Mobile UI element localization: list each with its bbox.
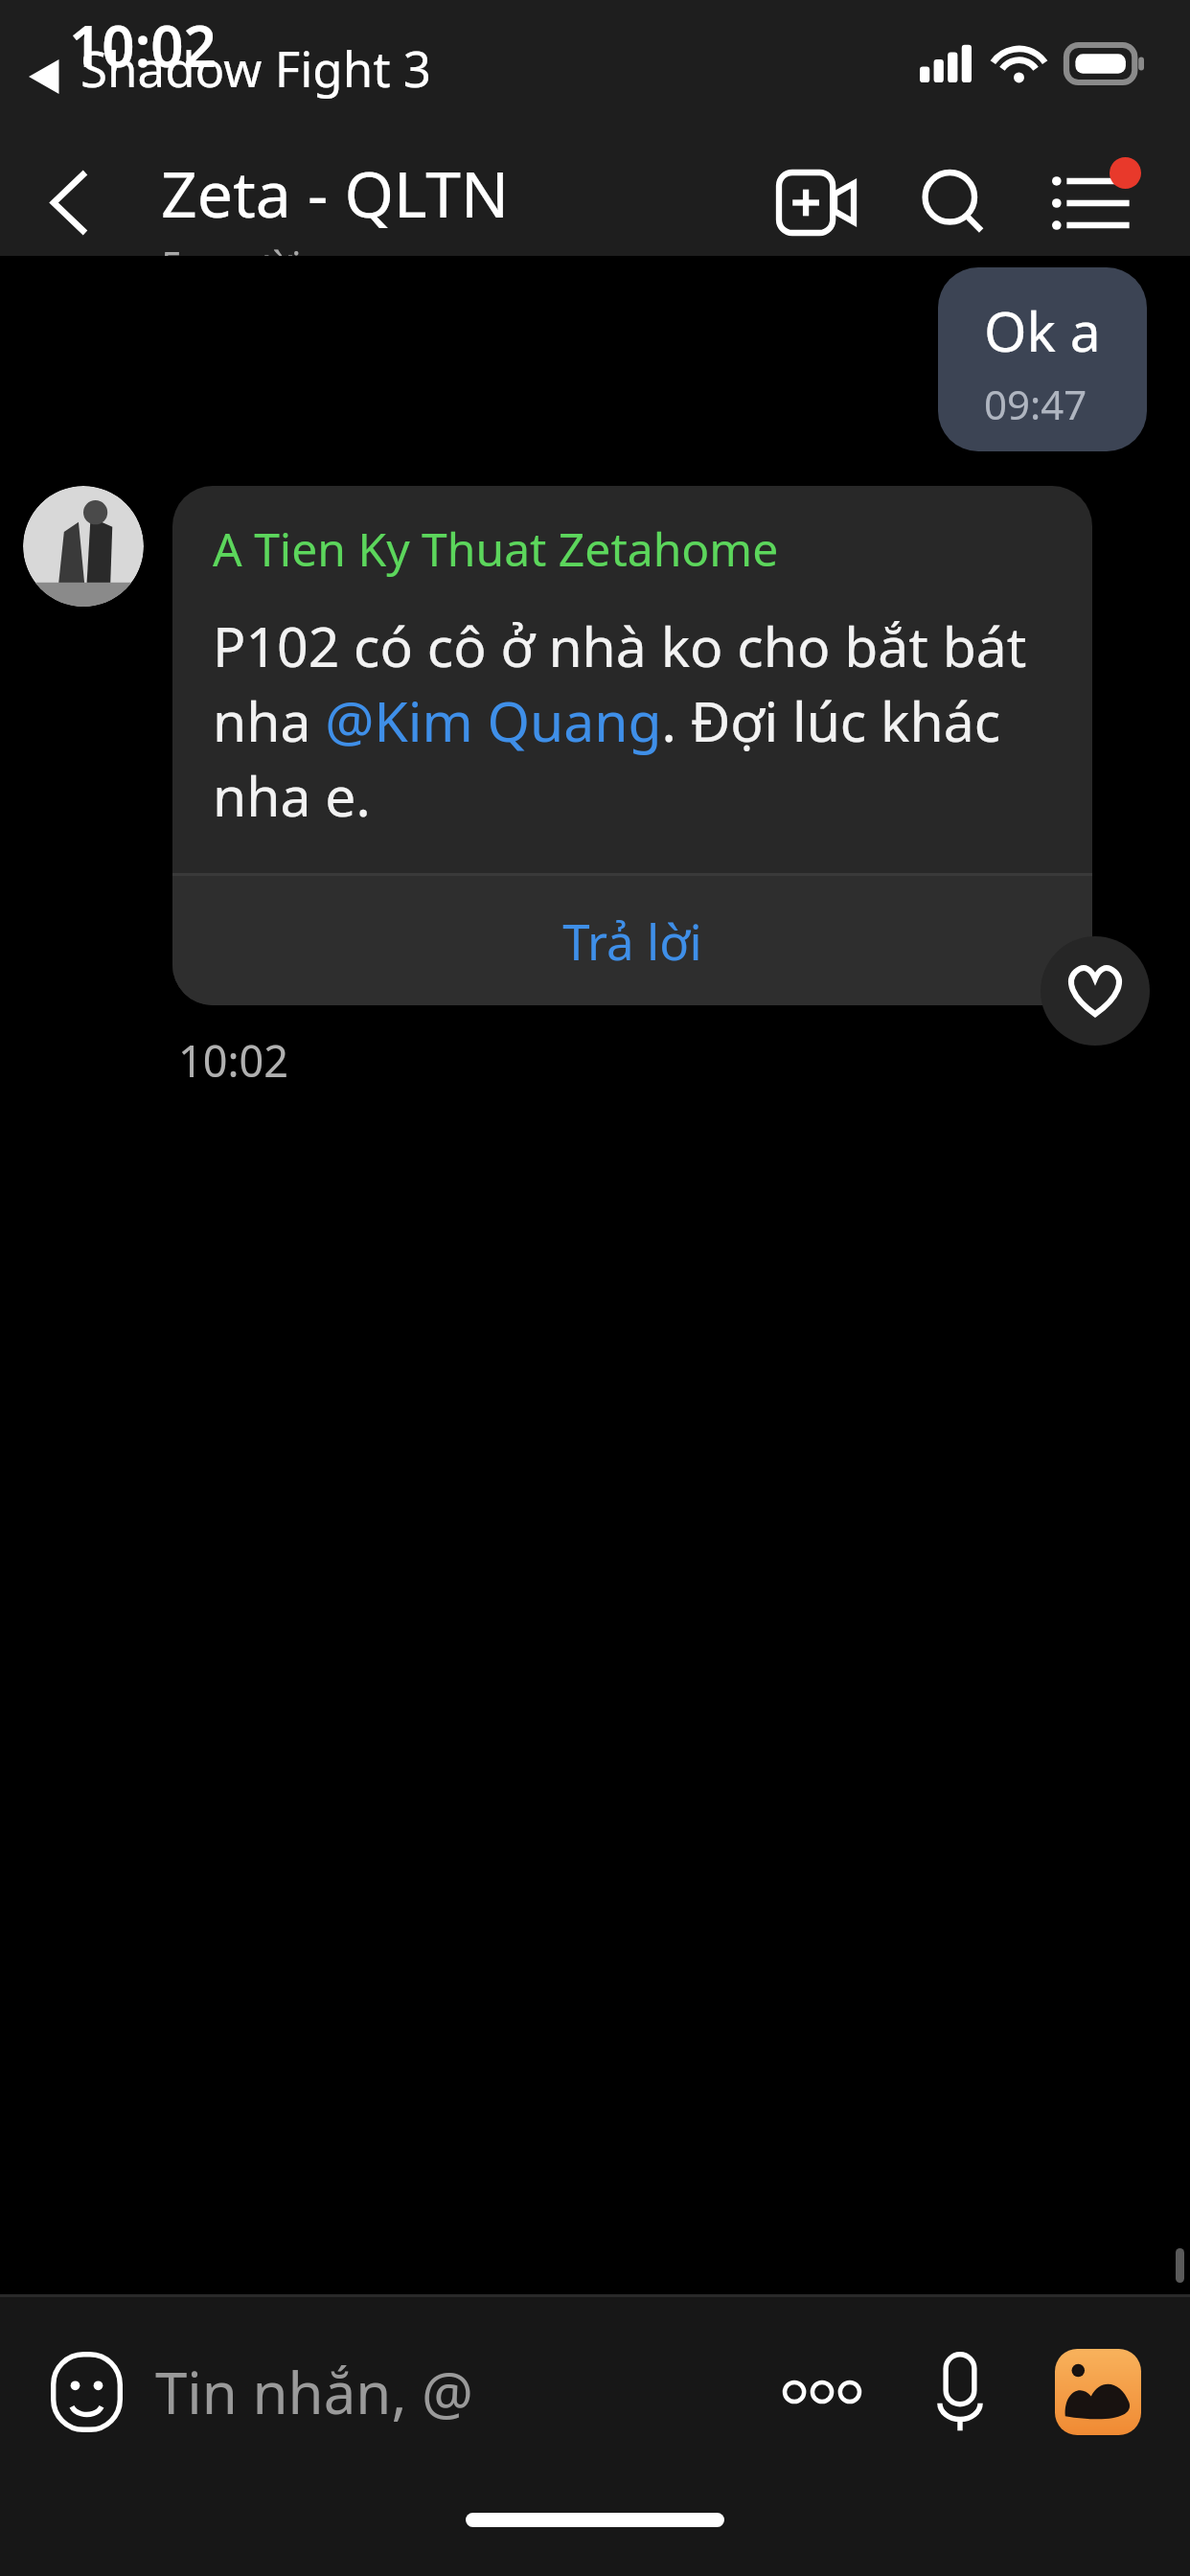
staticText: Trả lời bbox=[562, 908, 702, 974]
button[interactable]: Send photo bbox=[1029, 2323, 1167, 2461]
staticText: 10:02 bbox=[178, 1031, 289, 1090]
staticText: 09:47 bbox=[984, 377, 1087, 431]
button[interactable]: Back bbox=[6, 149, 132, 256]
staticText: Zeta - QLTN bbox=[161, 149, 510, 236]
staticText: 10:02 bbox=[69, 6, 217, 84]
button[interactable]: Search bbox=[885, 149, 1023, 256]
button[interactable]: Ok a bbox=[938, 267, 1147, 451]
staticText: A Tien Ky Thuat Zetahome bbox=[213, 517, 779, 580]
button[interactable]: Trả lời bbox=[172, 876, 1092, 1005]
staticText: P102 có cô ở nhà ko cho bắt bát nha @Kim… bbox=[213, 609, 1052, 833]
button[interactable]: Menu bbox=[1023, 149, 1161, 256]
button[interactable]: A Tien Ky Thuat Zetahome bbox=[172, 486, 1092, 1005]
button[interactable]: Sticker bbox=[23, 2329, 149, 2455]
staticText: Ok a bbox=[984, 293, 1101, 368]
button[interactable]: More options bbox=[753, 2323, 891, 2461]
button[interactable]: Voice message bbox=[891, 2323, 1029, 2461]
staticText: Shadow Fight 3 bbox=[80, 34, 432, 101]
button[interactable]: Video call bbox=[747, 149, 885, 256]
staticText: 5 người bbox=[161, 239, 302, 256]
staticText: Tin nhắn, @ bbox=[155, 2353, 474, 2431]
button[interactable]: Like bbox=[1041, 936, 1150, 1046]
